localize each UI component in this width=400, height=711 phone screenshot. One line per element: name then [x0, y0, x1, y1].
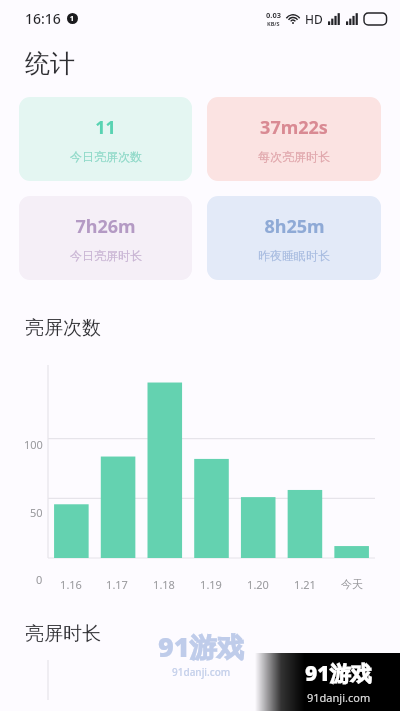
button[interactable]: 37m22s [207, 97, 381, 181]
staticText: 0 [36, 572, 43, 587]
staticText: 今天 [341, 577, 363, 591]
staticText: 11 [95, 115, 116, 140]
staticText: 1.17 [106, 577, 128, 592]
staticText: 37m22s [260, 115, 328, 140]
staticText: 8h25m [264, 214, 325, 239]
staticText: 1.20 [247, 577, 269, 592]
staticText: 今日亮屏时长 [70, 248, 142, 263]
staticText: 91danji.com [307, 690, 371, 705]
staticText: 1.21 [294, 577, 316, 592]
staticText: 91danji.com [172, 665, 231, 679]
button[interactable]: 11 [19, 97, 192, 181]
staticText: 统计 [25, 48, 75, 79]
staticText: HD [305, 11, 323, 27]
staticText: 每次亮屏时长 [258, 149, 330, 164]
staticText: 0.03 [266, 10, 281, 20]
staticText: 1.19 [200, 577, 222, 592]
staticText: 1.18 [153, 577, 175, 592]
staticText: 亮屏次数 [25, 316, 101, 340]
staticText: 91游戏 [305, 659, 372, 688]
staticText: 1 [70, 14, 75, 24]
staticText: 50 [30, 505, 43, 520]
button[interactable]: 7h26m [19, 196, 192, 280]
staticText: 16:16 [25, 9, 61, 28]
staticText: 昨夜睡眠时长 [258, 248, 330, 263]
staticText: 1.16 [60, 577, 82, 592]
button[interactable]: 8h25m [207, 196, 381, 280]
staticText: 7h26m [75, 214, 136, 239]
staticText: 100 [24, 437, 43, 452]
staticText: 今日亮屏次数 [70, 149, 142, 164]
staticText: 91游戏 [158, 628, 244, 665]
staticText: KB/S [267, 20, 280, 27]
staticText: 亮屏时长 [25, 622, 101, 646]
